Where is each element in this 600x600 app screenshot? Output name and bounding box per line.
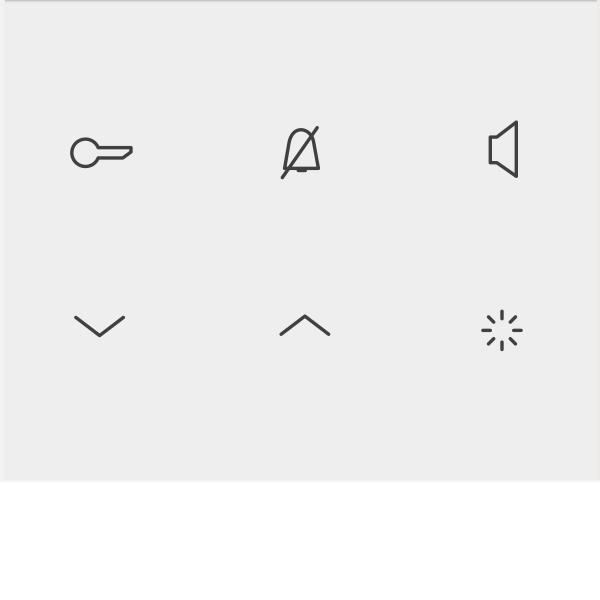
button[interactable]: Sound (437, 93, 569, 205)
button[interactable]: Brightness (436, 274, 568, 386)
button[interactable]: Doorbell muted (236, 93, 368, 205)
button[interactable]: Lock (36, 96, 168, 208)
button[interactable]: Blind down (34, 270, 166, 382)
button[interactable]: Blind up (239, 269, 371, 381)
